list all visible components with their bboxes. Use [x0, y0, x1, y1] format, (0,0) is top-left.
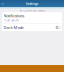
staticText: Notifications [3, 13, 24, 18]
staticText: Dark Mode [3, 25, 23, 30]
button[interactable]: Dark Mode [2, 24, 62, 31]
button[interactable]: Back [0, 0, 5, 6]
staticText: Settings [25, 1, 38, 6]
staticText: Push alerts [3, 19, 18, 22]
button[interactable]: Notifications [2, 12, 62, 23]
staticText: ACCOUNT SETTINGS [19, 9, 44, 12]
staticText: < [1, 1, 3, 6]
